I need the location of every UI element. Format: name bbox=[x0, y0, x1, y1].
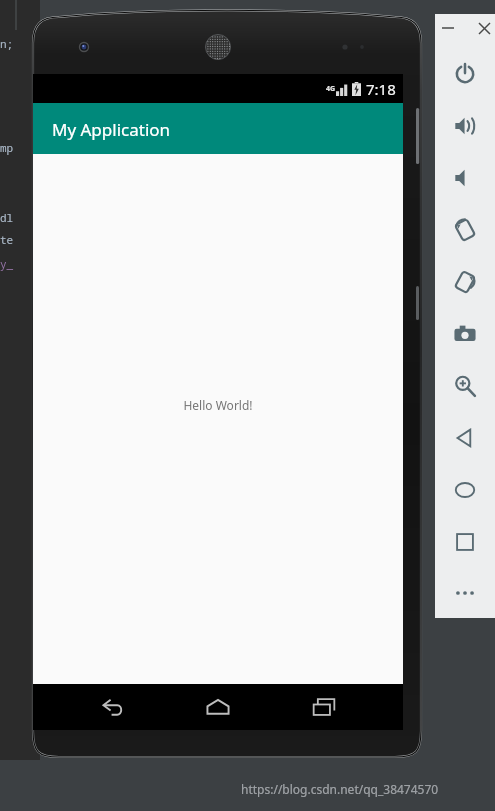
button[interactable]: Overview bbox=[438, 516, 492, 568]
button[interactable]: Back bbox=[438, 412, 492, 464]
button[interactable]: My Application bbox=[33, 103, 403, 154]
staticText: Hello World! bbox=[183, 397, 253, 413]
button[interactable]: Rotate left bbox=[438, 204, 492, 256]
button[interactable]: Home bbox=[192, 687, 244, 727]
staticText: My Application bbox=[52, 118, 171, 141]
button[interactable]: Power bbox=[438, 48, 492, 100]
button[interactable]: Close bbox=[473, 15, 495, 41]
button[interactable]: More bbox=[438, 568, 492, 618]
button[interactable]: Volume down bbox=[438, 152, 492, 204]
button[interactable]: Take screenshot bbox=[438, 308, 492, 360]
staticText: 7:18 bbox=[366, 79, 396, 99]
button[interactable]: Rotate right bbox=[438, 256, 492, 308]
staticText: mp bbox=[0, 140, 14, 155]
button[interactable]: Zoom bbox=[438, 360, 492, 412]
button[interactable]: Minimise bbox=[435, 15, 461, 41]
staticText: n; bbox=[0, 36, 14, 51]
staticText: y_ bbox=[0, 256, 14, 271]
button[interactable]: Home bbox=[438, 464, 492, 516]
button[interactable]: Volume up bbox=[438, 100, 492, 152]
button[interactable]: Recent apps bbox=[298, 687, 350, 727]
staticText: dl bbox=[0, 210, 14, 225]
staticText: 4G bbox=[326, 84, 336, 94]
staticText: https://blog.csdn.net/qq_38474570 bbox=[241, 781, 439, 797]
button[interactable]: Back bbox=[87, 687, 139, 727]
staticText: te bbox=[0, 232, 14, 247]
